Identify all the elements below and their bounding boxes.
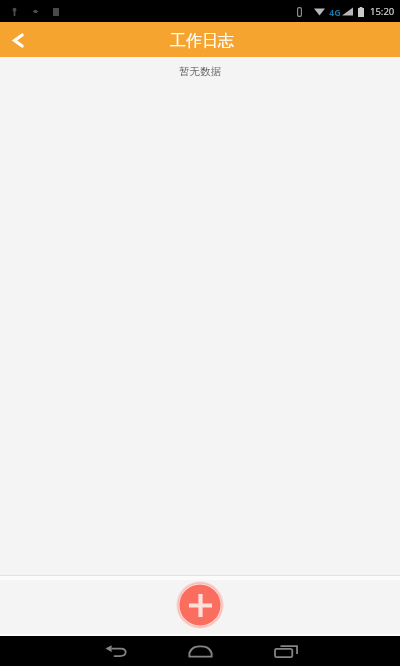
staticText: 工作日志	[170, 31, 234, 51]
button[interactable]: Home	[158, 636, 243, 666]
button[interactable]: Back	[0, 22, 40, 57]
button[interactable]: Add	[176, 581, 224, 629]
button[interactable]: Recents	[243, 636, 328, 666]
staticText: 15:20	[370, 5, 395, 18]
button[interactable]: Back	[73, 636, 158, 666]
staticText: 暂无数据	[0, 65, 400, 78]
staticText: 4G	[329, 6, 341, 18]
